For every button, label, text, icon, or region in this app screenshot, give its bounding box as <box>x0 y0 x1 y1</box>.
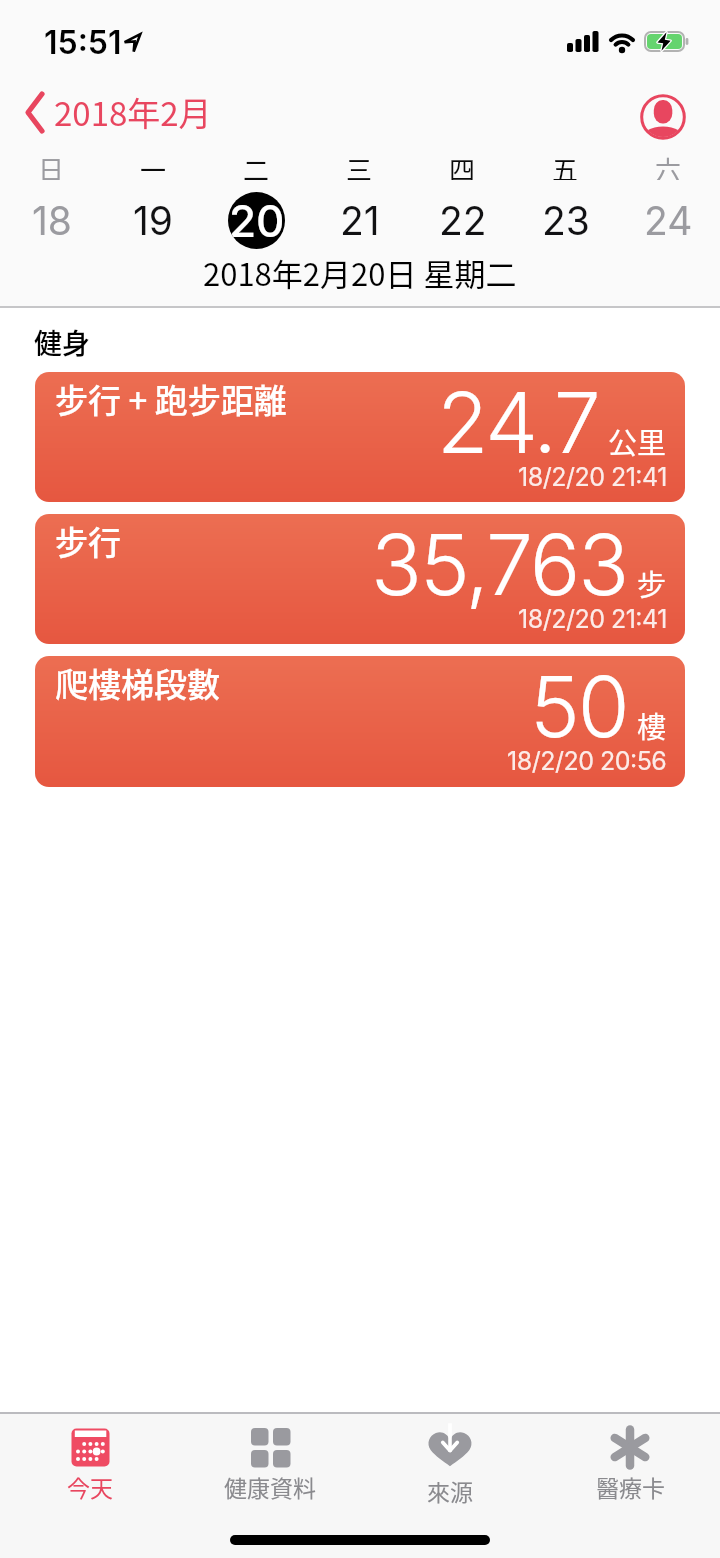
staticText: 健身 <box>34 322 91 363</box>
button[interactable]: 22 <box>434 192 491 249</box>
staticText: 23 <box>542 197 590 244</box>
staticText: 2018年2月 <box>54 88 212 136</box>
button[interactable]: 健康資料 <box>180 1413 360 1533</box>
staticText: 五 <box>552 150 579 180</box>
staticText: 18/2/20 20:56 <box>507 746 667 776</box>
staticText: 三 <box>346 150 373 180</box>
staticText: 來源 <box>427 1474 473 1507</box>
staticText: 步 <box>637 562 667 604</box>
staticText: 日 <box>38 150 65 180</box>
staticText: 一 <box>140 150 167 180</box>
staticText: 24.7 <box>437 372 599 474</box>
button[interactable]: 20 <box>228 192 285 249</box>
button[interactable]: 18 <box>23 192 80 249</box>
staticText: 18/2/20 21:41 <box>518 462 667 492</box>
staticText: 步行 + 跑步距離 <box>55 375 287 423</box>
button[interactable]: 醫療卡 <box>540 1413 720 1533</box>
button[interactable]: 2018年2月 <box>16 88 256 140</box>
button[interactable]: 23 <box>537 192 594 249</box>
button[interactable]: 21 <box>331 192 388 249</box>
button[interactable]: 19 <box>125 192 182 249</box>
staticText: 健康資料 <box>224 1470 316 1503</box>
staticText: 爬樓梯段數 <box>55 659 220 707</box>
staticText: 六 <box>655 150 682 180</box>
staticText: 15:51 <box>44 23 122 62</box>
button[interactable] <box>638 92 690 144</box>
staticText: 樓 <box>637 704 667 746</box>
staticText: 21 <box>340 197 380 244</box>
button[interactable]: 24 <box>640 192 697 249</box>
staticText: 公里 <box>608 420 667 462</box>
staticText: 四 <box>449 150 476 180</box>
staticText: 今天 <box>67 1470 113 1503</box>
button[interactable]: 今天 <box>0 1413 180 1533</box>
staticText: 22 <box>439 197 487 244</box>
staticText: 二 <box>243 150 270 180</box>
staticText: 20 <box>229 194 285 247</box>
staticText: 18 <box>32 197 72 244</box>
button[interactable]: 步行 <box>35 514 685 644</box>
button[interactable]: 來源 <box>360 1413 540 1533</box>
staticText: 醫療卡 <box>596 1470 665 1503</box>
staticText: 35,763 <box>371 514 628 616</box>
staticText: 2018年2月20日 星期二 <box>203 250 517 295</box>
staticText: 步行 <box>55 517 121 565</box>
staticText: 19 <box>133 197 174 244</box>
button[interactable]: 步行 + 跑步距離 <box>35 372 685 502</box>
staticText: 24 <box>644 197 693 244</box>
staticText: 18/2/20 21:41 <box>518 604 667 634</box>
button[interactable]: 爬樓梯段數 <box>35 656 685 787</box>
staticText: 50 <box>530 656 628 758</box>
